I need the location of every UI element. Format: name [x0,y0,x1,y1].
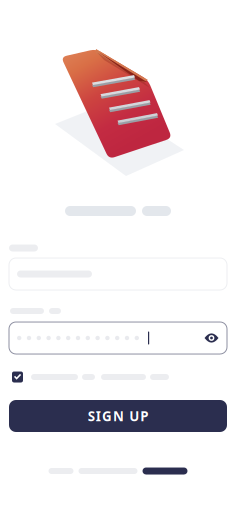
button[interactable]: Accept terms and conditions [12,371,23,382]
button[interactable]: Log in [142,467,187,474]
button[interactable]: SIGN UP [9,400,227,432]
staticText: SIGN UP [88,407,148,425]
button[interactable]: Show password [204,332,219,344]
